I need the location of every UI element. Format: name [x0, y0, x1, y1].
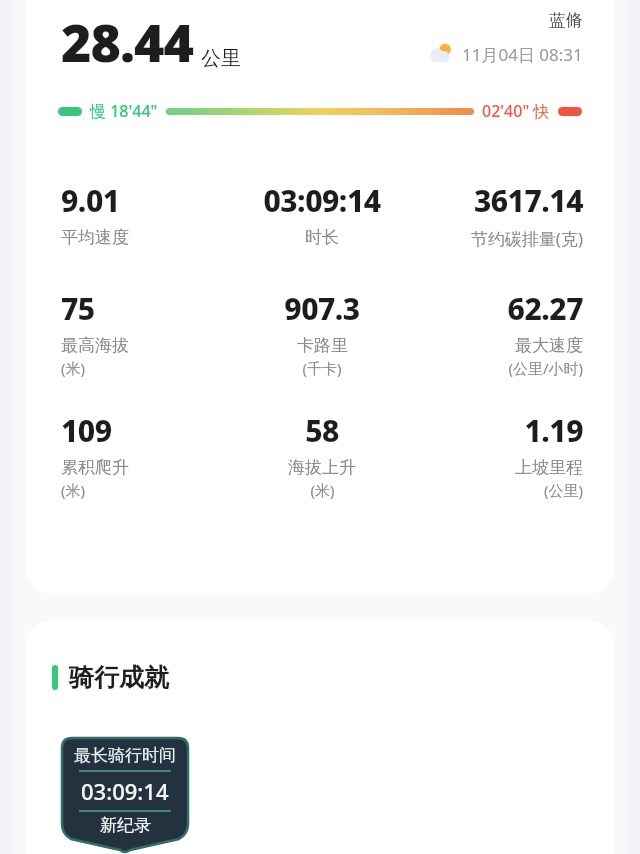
staticText: 最大速度: [515, 335, 583, 356]
staticText: 卡路里: [297, 335, 348, 356]
staticText: 02'40" 快: [482, 100, 550, 122]
staticText: 最高海拔: [61, 335, 129, 356]
button[interactable]: 75: [61, 288, 235, 378]
staticText: 时长: [305, 227, 339, 248]
staticText: (米): [310, 480, 335, 500]
staticText: 新纪录: [100, 815, 151, 836]
staticText: 蓝脩: [549, 10, 583, 31]
staticText: 上坡里程: [515, 457, 583, 478]
staticText: 907.3: [284, 288, 360, 329]
staticText: 骑行成就: [69, 662, 169, 693]
staticText: 03:09:14: [81, 776, 169, 806]
staticText: 公里: [201, 46, 241, 71]
staticText: 58: [305, 410, 339, 451]
button[interactable]: 03:09:14: [235, 180, 409, 248]
button[interactable]: 907.3: [235, 288, 409, 378]
button[interactable]: 9.01: [61, 180, 235, 248]
staticText: 9.01: [61, 180, 120, 221]
button[interactable]: 62.27: [409, 288, 583, 378]
button[interactable]: 1.19: [409, 410, 583, 500]
button[interactable]: 最长骑行时间: [62, 738, 188, 854]
staticText: 75: [61, 288, 95, 329]
button[interactable]: 58: [235, 410, 409, 500]
staticText: 节约碳排量(克): [470, 227, 583, 250]
staticText: 109: [61, 410, 112, 451]
staticText: (公里): [543, 480, 583, 500]
staticText: 平均速度: [61, 227, 129, 248]
button[interactable]: 3617.14: [409, 180, 583, 250]
staticText: 03:09:14: [263, 180, 381, 221]
staticText: 3617.14: [473, 180, 583, 221]
staticText: 累积爬升: [61, 457, 129, 478]
staticText: (千卡): [302, 358, 342, 378]
staticText: (米): [61, 358, 86, 378]
button[interactable]: 骑行成就: [52, 662, 169, 693]
staticText: 1.19: [524, 410, 583, 451]
staticText: (公里/小时): [508, 358, 583, 378]
staticText: 慢 18'44": [90, 100, 158, 122]
staticText: 最长骑行时间: [74, 745, 176, 766]
staticText: 11月04日 08:31: [462, 43, 583, 66]
staticText: 62.27: [507, 288, 583, 329]
other: Weather: [428, 41, 454, 67]
staticText: (米): [61, 480, 86, 500]
staticText: 28.44: [61, 6, 193, 77]
staticText: 海拔上升: [288, 457, 356, 478]
button[interactable]: 109: [61, 410, 235, 500]
